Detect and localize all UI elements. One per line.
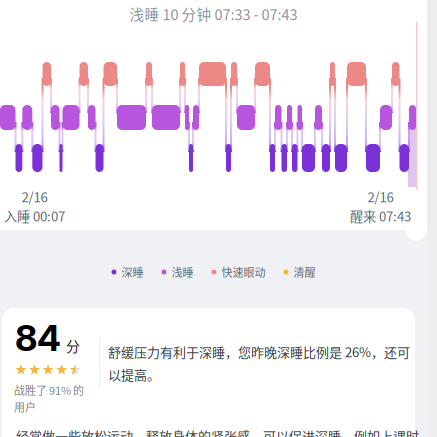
staticText: 深睡 <box>121 264 143 280</box>
staticText: 入睡 00:07 <box>4 206 65 225</box>
staticText: 舒缓压力有利于深睡，您昨晚深睡比例是 26%，还可 <box>108 342 410 361</box>
staticText: 醒来 07:43 <box>350 206 411 225</box>
staticText: 浅睡 <box>171 264 193 280</box>
staticText: 2/16 <box>21 187 47 206</box>
staticText: 清醒 <box>293 264 315 280</box>
staticText: 分 <box>66 335 80 356</box>
staticText: 84 <box>15 316 61 360</box>
staticText: 战胜了 91% 的 <box>14 382 84 398</box>
staticText: 经常做一些放松运动，释放身体的紧张感，可以促进深睡，例如上课时 <box>16 426 419 437</box>
staticText: 以提高。 <box>108 365 160 384</box>
staticText: 快速眼动 <box>221 264 265 280</box>
staticText: 浅睡 10 分钟 07:33 - 07:43 <box>129 3 297 24</box>
staticText: 用户 <box>14 399 36 415</box>
staticText: 2/16 <box>367 187 393 206</box>
